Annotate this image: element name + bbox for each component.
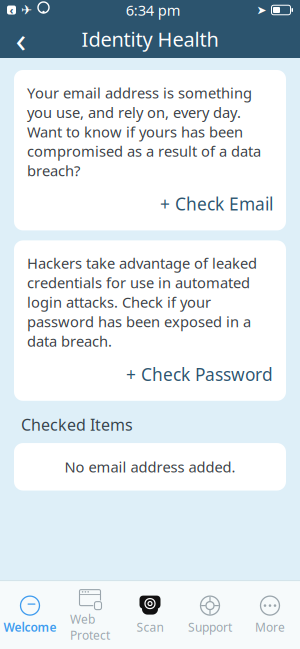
button[interactable]: More [240,589,300,641]
staticText: More [255,619,285,635]
staticText: Scan [136,619,163,635]
button[interactable]: + Check Email [27,180,273,217]
button[interactable]: Welcome [0,589,60,641]
staticText: ‹ [15,16,26,62]
button[interactable]: Scan [120,589,180,641]
staticText: Web Protect [70,611,110,643]
staticText: + Check Email [160,192,273,215]
staticText: ✈ [21,2,32,17]
staticText: Welcome [3,619,56,635]
staticText: ➤ [256,3,266,17]
staticText: Support [188,619,232,635]
staticText: Hackers take advantage of leaked credent… [27,253,257,351]
button[interactable]: + Check Password [27,351,273,388]
staticText: + Check Password [126,363,273,386]
staticText: Identity Health [81,26,218,52]
button[interactable]: Support [180,589,240,641]
staticText: 6:34 pm [126,0,181,20]
button[interactable]: Back [0,21,42,57]
staticText: Checked Items [21,414,133,435]
staticText: Your email address is something you use,… [27,83,261,180]
staticText: ‹ [9,3,13,17]
staticText: No email address added. [64,457,235,477]
button[interactable]: Web Protect [60,581,120,649]
